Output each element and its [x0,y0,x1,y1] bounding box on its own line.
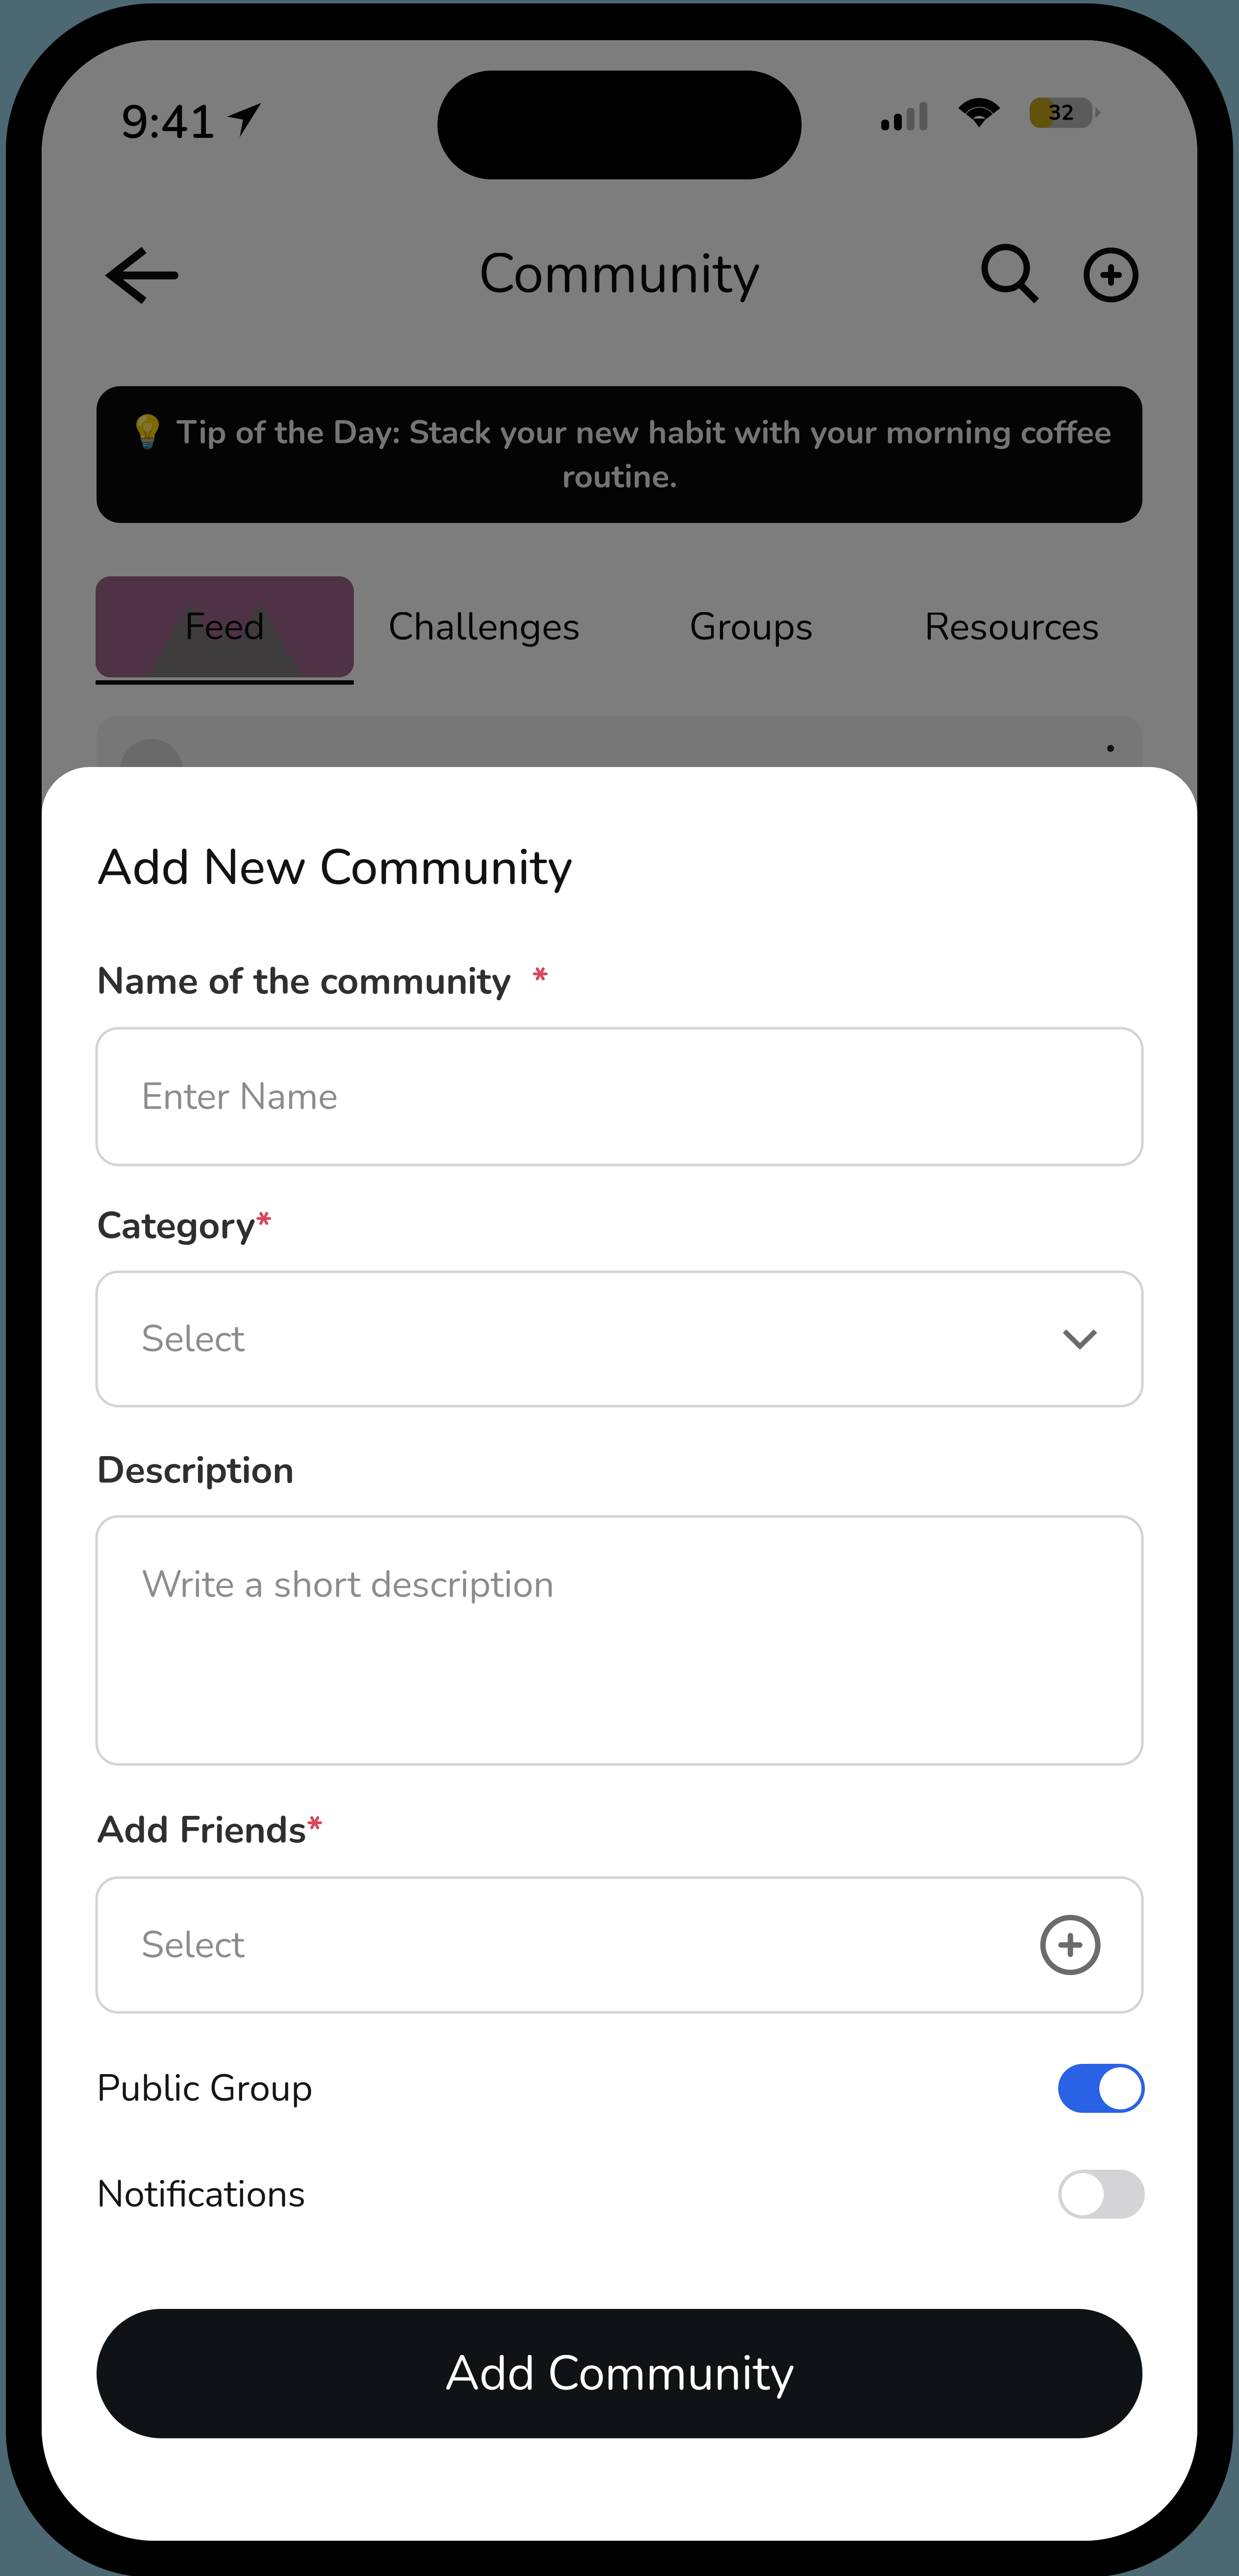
button[interactable]: Groups [663,576,840,677]
staticText: Category [97,1200,255,1251]
button[interactable]: Write a short description [97,1516,1142,1764]
staticText: Select [141,1920,245,1970]
button[interactable]: Feed [96,576,354,685]
staticText: 32 [1048,98,1074,127]
button[interactable]: Add Community [97,2309,1142,2438]
staticText: Write a short description [141,1559,554,1610]
staticText: Add Community [445,2341,794,2406]
staticText: Add New Community [97,834,573,901]
staticText: Select [141,1314,245,1364]
staticText: Resources [924,601,1100,653]
staticText: Name of the community [97,956,511,1007]
staticText: Description [97,1445,294,1496]
button[interactable]: Add community [1074,238,1148,312]
staticText: 9:41 [121,91,216,154]
button[interactable]: Search [975,238,1049,312]
staticText: Add Friends [97,1805,306,1855]
staticText: * [306,1805,323,1855]
button[interactable]: Select [97,1272,1142,1406]
staticText: Groups [689,601,814,653]
staticText: * [511,956,548,1007]
staticText: Community [478,237,761,311]
button[interactable]: Select [97,1878,1142,2012]
button[interactable]: Back [98,239,186,312]
button[interactable]: Enter Name [97,1028,1142,1165]
button[interactable]: Public Group [97,2049,1145,2128]
button[interactable]: Resources [904,576,1120,677]
staticText: Challenges [388,601,581,653]
staticText: Feed [185,601,265,652]
staticText: 💡 Tip of the Day: Stack your new habit w… [127,410,1112,499]
button[interactable]: Notifications [97,2155,1145,2233]
button[interactable]: Challenges [376,576,592,677]
staticText: Public Group [97,2063,313,2114]
staticText: Notifications [97,2169,306,2220]
staticText: Enter Name [141,1071,338,1122]
staticText: * [255,1200,272,1251]
